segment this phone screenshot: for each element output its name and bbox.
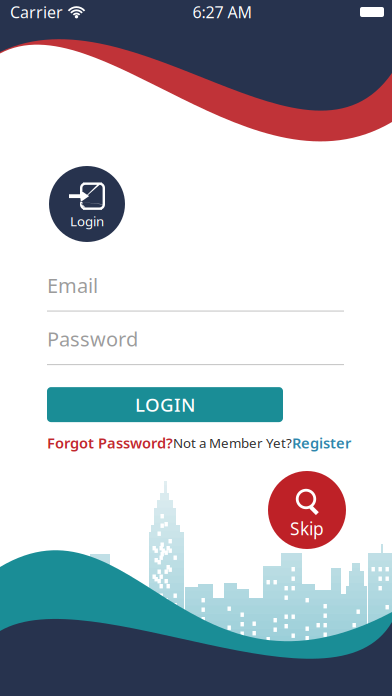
staticText: Forgot Password? bbox=[47, 433, 173, 453]
staticText: Password bbox=[47, 326, 138, 352]
button[interactable]: Login bbox=[49, 166, 125, 242]
staticText: Skip bbox=[290, 517, 324, 540]
staticText: Email bbox=[47, 272, 98, 299]
button[interactable]: Forgot Password? bbox=[47, 433, 173, 453]
button[interactable]: LOGIN bbox=[47, 387, 283, 422]
button[interactable]: Register bbox=[292, 433, 351, 453]
staticText: Register bbox=[292, 433, 351, 453]
staticText: Not a Member Yet? bbox=[173, 434, 292, 452]
staticText: Login bbox=[70, 212, 104, 230]
staticText: Carrier bbox=[10, 1, 63, 23]
staticText: LOGIN bbox=[135, 392, 195, 417]
staticText: 6:27 AM bbox=[192, 1, 252, 23]
button[interactable]: Skip bbox=[268, 471, 346, 549]
